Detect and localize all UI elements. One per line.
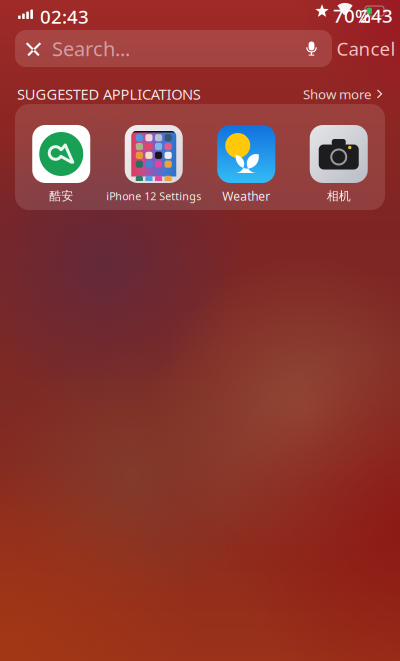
button[interactable]: Voice search bbox=[291, 30, 332, 67]
staticText: SUGGESTED APPLICATIONS bbox=[17, 84, 201, 104]
button[interactable]: Show more bbox=[303, 85, 383, 103]
staticText: 70% bbox=[333, 3, 371, 28]
staticText: Show more bbox=[303, 85, 372, 103]
staticText: Cancel bbox=[336, 36, 395, 61]
staticText: 酷安 bbox=[49, 189, 73, 203]
staticText: Search... bbox=[52, 35, 130, 62]
staticText: iPhone 12 Settings bbox=[106, 189, 201, 203]
staticText: 相机 bbox=[327, 189, 351, 203]
staticText: Weather bbox=[222, 188, 270, 204]
button[interactable]: Cancel bbox=[332, 30, 400, 67]
button[interactable]: 酷安 bbox=[15, 104, 107, 210]
button[interactable]: iPhone 12 Settings bbox=[107, 104, 200, 210]
button[interactable]: Clear bbox=[15, 30, 52, 67]
staticText: 02:43 bbox=[40, 4, 89, 29]
staticText: 2 bbox=[360, 3, 371, 28]
button[interactable]: 相机 bbox=[292, 104, 385, 210]
staticText: 43 bbox=[371, 3, 393, 28]
button[interactable]: Weather bbox=[200, 104, 292, 210]
